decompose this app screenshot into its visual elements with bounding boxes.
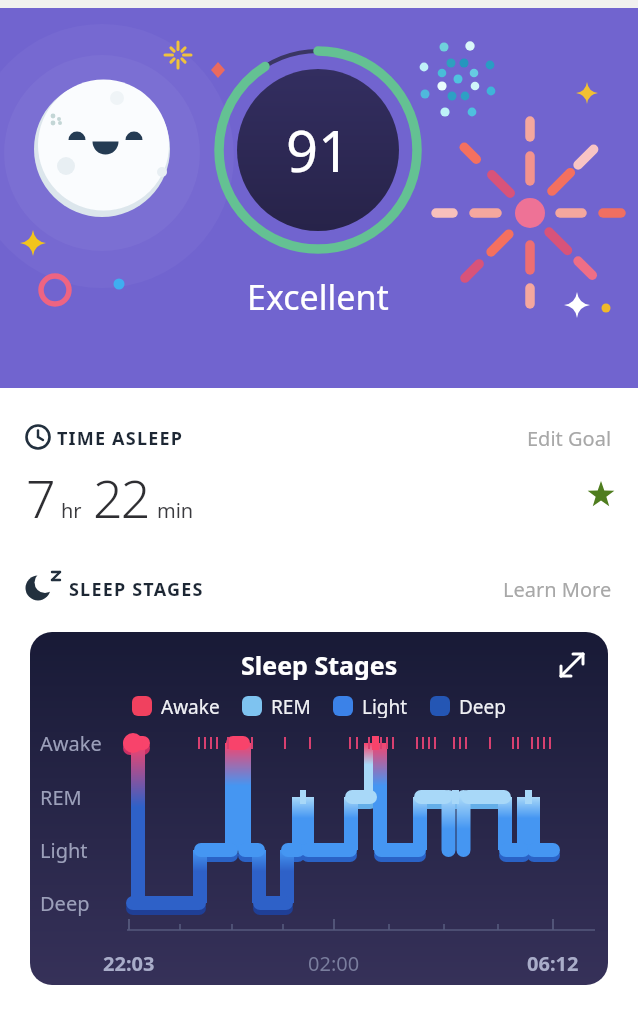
staticText: Edit Goal	[527, 425, 612, 452]
staticText: SLEEP STAGES	[69, 577, 204, 602]
staticText: 91	[286, 112, 351, 188]
staticText: Learn More	[503, 576, 612, 603]
button[interactable]: Learn More	[482, 575, 612, 603]
staticText: REM	[40, 784, 82, 811]
staticText: Light	[40, 837, 88, 864]
staticText: Awake	[161, 694, 220, 718]
staticText: REM	[271, 694, 311, 718]
staticText: 7	[26, 462, 54, 533]
button[interactable]	[547, 638, 599, 690]
button[interactable]: Edit Goal	[492, 424, 612, 452]
staticText: Excellent	[247, 274, 389, 318]
staticText: Sleep Stages	[241, 648, 398, 680]
staticText: hr	[61, 497, 82, 524]
staticText: 22:03	[103, 950, 155, 977]
staticText: Deep	[459, 694, 506, 718]
staticText: Light	[362, 694, 408, 718]
staticText: min	[157, 497, 194, 524]
staticText: Deep	[40, 890, 90, 917]
staticText: 06:12	[527, 950, 579, 977]
staticText: 02:00	[308, 950, 360, 977]
staticText: Awake	[40, 730, 102, 757]
staticText: 22	[93, 462, 149, 533]
staticText: TIME ASLEEP	[57, 426, 184, 451]
